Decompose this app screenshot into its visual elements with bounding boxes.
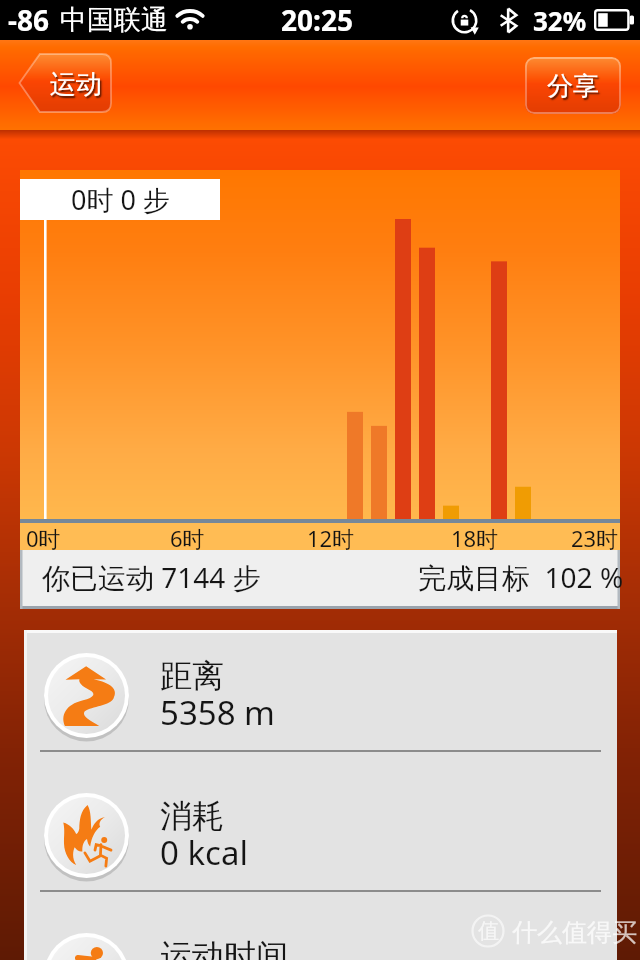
staticText: 运动时间 xyxy=(160,936,288,960)
staticText: 12时 xyxy=(307,523,355,550)
staticText: 18时 xyxy=(451,523,499,550)
staticText: 0时 0 步 xyxy=(71,181,170,218)
staticText: 什么值得买 xyxy=(512,917,637,948)
staticText: 值 xyxy=(478,918,499,944)
staticText: 运动 xyxy=(50,68,102,101)
button[interactable]: 分享 xyxy=(525,57,621,114)
staticText: 中国联通 xyxy=(60,3,168,37)
staticText: 距离 xyxy=(160,656,224,696)
button[interactable]: 返回 xyxy=(18,54,111,112)
staticText: 分享 xyxy=(547,70,599,103)
staticText: 5358 m xyxy=(160,690,275,735)
staticText: 32% xyxy=(533,3,587,38)
button[interactable]: 消耗 xyxy=(24,765,617,905)
staticText: 消耗 xyxy=(160,796,224,836)
staticText: 你已运动 7144 步 xyxy=(42,558,261,596)
button[interactable]: 运动时间 xyxy=(24,905,617,960)
staticText: 0时 xyxy=(26,523,61,550)
staticText: 6时 xyxy=(170,523,205,550)
button[interactable]: 距离 xyxy=(24,625,617,765)
staticText: 完成目标 102 % xyxy=(418,558,624,596)
staticText: -86 xyxy=(8,1,49,39)
staticText: 20:25 xyxy=(281,1,353,39)
staticText: 0 kcal xyxy=(160,830,248,875)
staticText: 23时 xyxy=(571,523,619,550)
